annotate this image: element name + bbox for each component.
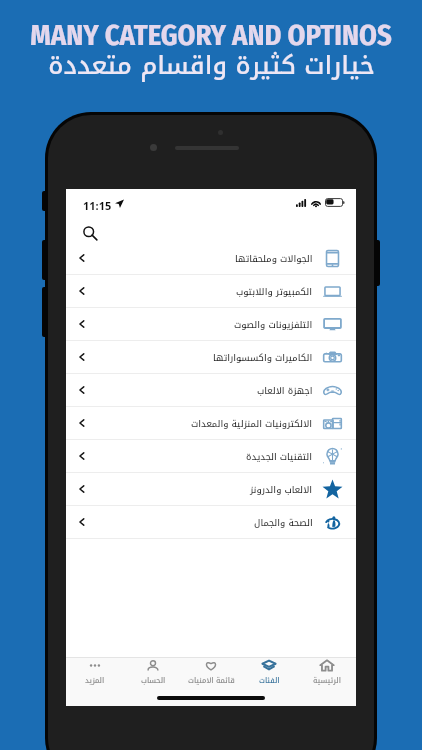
button[interactable]: التلفزيونات والصوت — [66, 308, 356, 341]
button[interactable]: الصحة والجمال — [66, 506, 356, 539]
staticText: الالعاب والدرونز — [250, 481, 313, 498]
button[interactable]: الرئيسية — [298, 658, 356, 692]
staticText: الفئات — [259, 674, 280, 688]
button[interactable]: اجهزة الالعاب — [66, 374, 356, 407]
staticText: التلفزيونات والصوت — [234, 316, 313, 333]
button[interactable]: الالكترونيات المنزلية والمعدات — [66, 407, 356, 440]
button[interactable]: الجوالات وملحقاتها — [66, 242, 356, 275]
staticText: 11:15 — [83, 198, 112, 213]
staticText: قائمة الامنيات — [188, 674, 235, 688]
button[interactable]: قائمة الامنيات — [182, 658, 240, 692]
button[interactable]: التقنيات الجديدة — [66, 440, 356, 473]
button[interactable]: الالعاب والدرونز — [66, 473, 356, 506]
staticText: الالكترونيات المنزلية والمعدات — [191, 415, 313, 432]
staticText: اجهزة الالعاب — [257, 382, 313, 399]
staticText: خيارات كثيرة واقسام متعددة — [48, 42, 375, 89]
staticText: الكمبيوتر واللابتوب — [236, 283, 313, 300]
staticText: التقنيات الجديدة — [246, 448, 313, 465]
button[interactable]: الكاميرات واكسسواراتها — [66, 341, 356, 374]
staticText: MANY CATEGORY AND OPTINOS — [30, 18, 392, 52]
staticText: الكاميرات واكسسواراتها — [213, 349, 313, 366]
staticText: الرئيسية — [313, 674, 341, 688]
button[interactable]: الحساب — [124, 658, 182, 692]
button[interactable]: Search — [77, 220, 103, 246]
staticText: الجوالات وملحقاتها — [235, 250, 313, 267]
button[interactable]: الفئات — [240, 658, 298, 692]
staticText: الحساب — [141, 674, 166, 688]
staticText: المزيد — [85, 674, 105, 688]
button[interactable]: الكمبيوتر واللابتوب — [66, 275, 356, 308]
staticText: الصحة والجمال — [254, 514, 313, 531]
button[interactable]: المزيد — [66, 658, 124, 692]
